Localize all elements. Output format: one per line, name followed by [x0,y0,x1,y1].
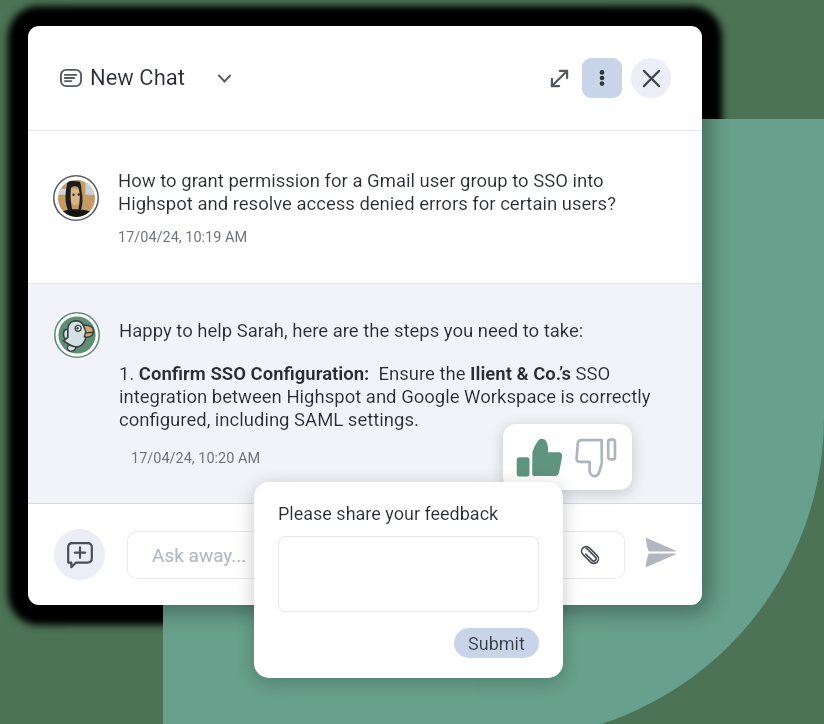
button[interactable]: Thumbs down [573,433,624,481]
staticText: 17/04/24, 10:20 AM [131,450,261,467]
staticText: 17/04/24, 10:19 AM [118,229,248,246]
button[interactable]: Thumbs up [511,433,573,481]
button[interactable]: Send [638,530,682,574]
button[interactable]: Close [631,58,671,98]
staticText: Happy to help Sarah, here are the steps … [119,320,584,342]
button[interactable]: New Chat [60,65,231,91]
button[interactable]: Submit [454,628,539,658]
button[interactable]: Ask away... [127,531,625,579]
button[interactable]: Expand [540,59,578,97]
staticText: New Chat [90,65,185,91]
button[interactable]: New message [54,529,105,580]
staticText: 1. Confirm SSO Configuration: Ensure the… [119,363,651,431]
staticText: How to grant permission for a Gmail user… [118,170,616,215]
staticText: Submit [468,633,525,654]
staticText: Ask away... [152,544,247,566]
button[interactable]: Attach file [577,542,603,568]
button[interactable]: More options [582,58,622,98]
staticText: Please share your feedback [278,503,499,524]
button[interactable]: Feedback text field [278,536,539,612]
